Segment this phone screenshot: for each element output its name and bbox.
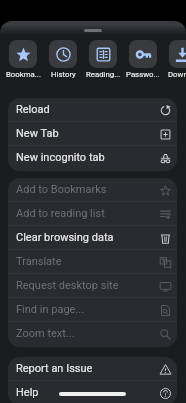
staticText: New incognito tab — [16, 151, 160, 164]
button[interactable]: New Tab — [8, 122, 177, 146]
staticText: Clear browsing data — [16, 231, 160, 244]
button[interactable]: Request desktop site — [8, 274, 177, 298]
button[interactable]: Reading list — [89, 40, 117, 79]
button[interactable]: Find in page... — [8, 298, 177, 322]
staticText: Request desktop site — [16, 279, 160, 292]
staticText: Reading... — [86, 70, 121, 79]
button[interactable]: New incognito tab — [8, 146, 177, 170]
button[interactable]: Clear browsing data — [8, 226, 177, 250]
button[interactable]: Translate — [8, 250, 177, 274]
staticText: Add to reading list — [16, 207, 160, 220]
staticText: Report an Issue — [16, 362, 160, 375]
button[interactable]: Reload — [8, 98, 177, 122]
button[interactable]: History — [49, 40, 77, 79]
button[interactable]: Passwords — [129, 40, 157, 79]
button[interactable]: Add to Bookmarks — [8, 178, 177, 202]
staticText: Find in page... — [16, 303, 160, 316]
staticText: Add to Bookmarks — [16, 183, 160, 196]
staticText: New Tab — [16, 127, 160, 140]
staticText: Passwo... — [126, 70, 160, 79]
staticText: Downl... — [168, 70, 186, 79]
button[interactable]: Help — [8, 381, 177, 403]
staticText: Translate — [16, 255, 160, 268]
staticText: Help — [16, 386, 160, 399]
staticText: History — [51, 70, 76, 79]
button[interactable]: Bookmarks — [9, 40, 37, 79]
button[interactable]: Downloads — [169, 40, 186, 79]
button[interactable]: Add to reading list — [8, 202, 177, 226]
staticText: Zoom text... — [16, 327, 160, 340]
button[interactable]: Zoom text... — [8, 322, 177, 346]
staticText: Bookma... — [6, 70, 41, 79]
button[interactable]: Report an Issue — [8, 357, 177, 381]
staticText: Reload — [16, 103, 160, 116]
